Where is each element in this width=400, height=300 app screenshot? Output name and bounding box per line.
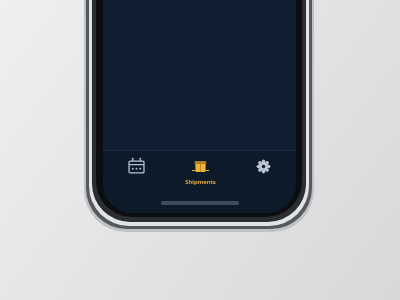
button[interactable]: Settings: [232, 151, 294, 197]
button[interactable]: Shipments: [169, 151, 231, 197]
button[interactable]: Calendar: [105, 151, 167, 197]
staticText: Shipments: [185, 178, 216, 186]
